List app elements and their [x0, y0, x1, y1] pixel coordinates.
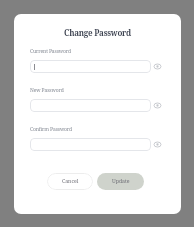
button[interactable]: Show password: [152, 139, 163, 150]
button[interactable]: Cancel: [47, 173, 93, 190]
button[interactable]: [30, 138, 151, 151]
button[interactable]: [30, 60, 151, 73]
staticText: New Password: [30, 87, 64, 94]
staticText: Update: [112, 177, 130, 184]
staticText: Current Password: [30, 48, 71, 55]
staticText: Confirm Password: [30, 126, 73, 133]
staticText: Cancel: [62, 177, 79, 184]
staticText: Change Password: [14, 27, 181, 38]
button[interactable]: [30, 99, 151, 112]
button[interactable]: Show password: [152, 100, 163, 111]
button[interactable]: Show password: [152, 61, 163, 72]
button[interactable]: Update: [97, 173, 144, 190]
